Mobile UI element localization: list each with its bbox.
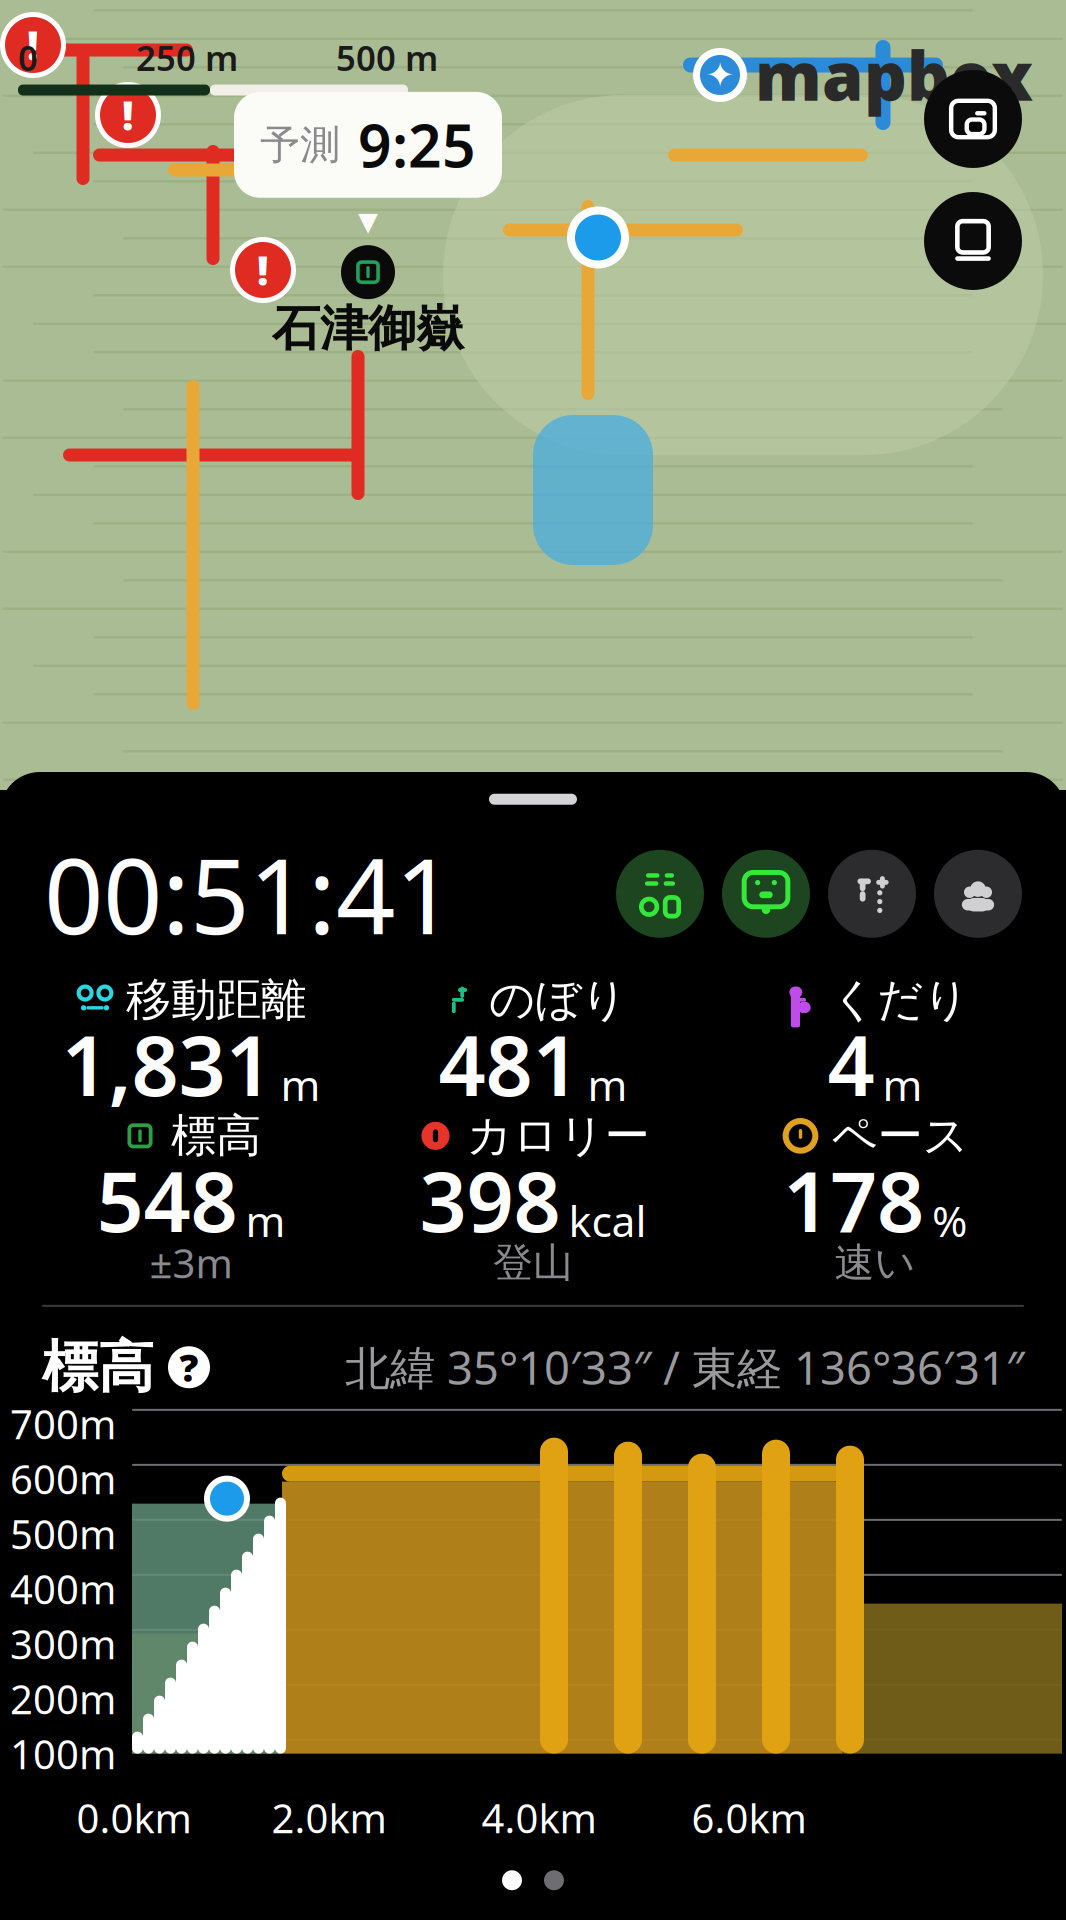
staticText: 北緯 35°10′33″ / 東経 136°36′31″ xyxy=(345,1337,1024,1397)
staticText: 6.0km xyxy=(691,1791,806,1844)
button[interactable]: About elevation xyxy=(168,1342,210,1392)
staticText: 予測 xyxy=(260,120,340,169)
staticText: 500 m xyxy=(336,34,438,80)
staticText: ! xyxy=(122,88,134,141)
staticText: 481 xyxy=(438,1009,579,1119)
staticText: 9:25 xyxy=(358,106,476,184)
staticText: m xyxy=(280,1056,320,1113)
staticText: 速い xyxy=(834,1238,915,1287)
staticText: m xyxy=(587,1056,627,1113)
staticText: 300m xyxy=(10,1617,116,1670)
button[interactable]: Minimize map xyxy=(924,70,1022,168)
staticText: 標高 xyxy=(171,1108,261,1164)
staticText: カロリー xyxy=(466,1108,649,1164)
staticText: ! xyxy=(27,18,39,71)
staticText: 100m xyxy=(10,1727,116,1780)
button[interactable]: Off route xyxy=(828,850,916,938)
button[interactable]: Route plan xyxy=(616,850,704,938)
staticText: 4.0km xyxy=(481,1791,596,1844)
staticText: 250 m xyxy=(136,34,238,80)
staticText: 600m xyxy=(10,1452,116,1505)
button[interactable]: Messages xyxy=(722,850,810,938)
button[interactable]: Group members xyxy=(934,850,1022,938)
staticText: くだり xyxy=(831,972,969,1028)
staticText: m xyxy=(882,1056,922,1113)
staticText: ペース xyxy=(831,1108,968,1164)
staticText: 200m xyxy=(10,1672,116,1725)
staticText: ✦ xyxy=(705,55,734,95)
staticText: mapbox xyxy=(755,31,1033,119)
staticText: ±3m xyxy=(149,1236,232,1289)
staticText: % xyxy=(932,1192,967,1249)
button[interactable]: Map layers xyxy=(924,192,1022,290)
staticText: 548 xyxy=(96,1145,237,1255)
staticText: 398 xyxy=(419,1145,560,1255)
staticText: 石津御嶽 xyxy=(272,299,464,358)
staticText: ! xyxy=(257,243,269,296)
staticText: 1,831 xyxy=(61,1009,272,1119)
staticText: 500m xyxy=(10,1507,116,1560)
staticText: 2.0km xyxy=(271,1791,386,1844)
staticText: 700m xyxy=(10,1397,116,1450)
staticText: m xyxy=(245,1192,285,1249)
staticText: ▾ xyxy=(358,198,378,243)
staticText: 4 xyxy=(827,1009,874,1119)
staticText: 00:51:41 xyxy=(44,825,454,963)
staticText: 標高 xyxy=(42,1333,154,1402)
staticText: 登山 xyxy=(493,1238,573,1287)
staticText: ? xyxy=(179,1342,198,1392)
staticText: kcal xyxy=(568,1192,646,1249)
staticText: のぼり xyxy=(489,972,627,1028)
staticText: 178 xyxy=(783,1145,924,1255)
staticText: 移動距離 xyxy=(126,972,306,1028)
staticText: 0.0km xyxy=(76,1791,191,1844)
staticText: 0 xyxy=(18,34,38,80)
staticText: 400m xyxy=(10,1562,116,1615)
